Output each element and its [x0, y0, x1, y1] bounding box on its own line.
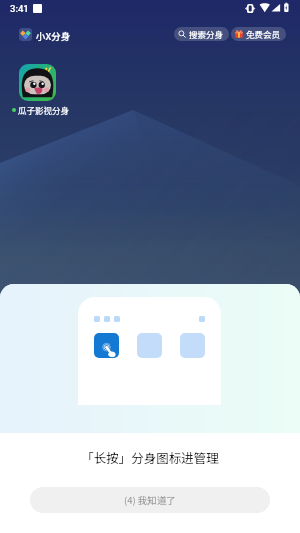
- staticText: 「长按」分身图标进管理: [0, 448, 300, 466]
- staticText: 搜索分身: [189, 28, 224, 40]
- button[interactable]: 免费会员: [231, 27, 286, 41]
- button[interactable]: (4) 我知道了: [30, 487, 270, 513]
- button[interactable]: App logo: [19, 28, 32, 41]
- staticText: 瓜子影视分身: [18, 104, 70, 116]
- staticText: (4) 我知道了: [124, 493, 176, 507]
- button[interactable]: 搜索分身: [174, 27, 229, 41]
- button[interactable]: 瓜子影视分身: [19, 64, 56, 101]
- staticText: 免费会员: [246, 28, 281, 40]
- staticText: 小X分身: [36, 29, 71, 43]
- staticText: 3:41: [10, 3, 29, 14]
